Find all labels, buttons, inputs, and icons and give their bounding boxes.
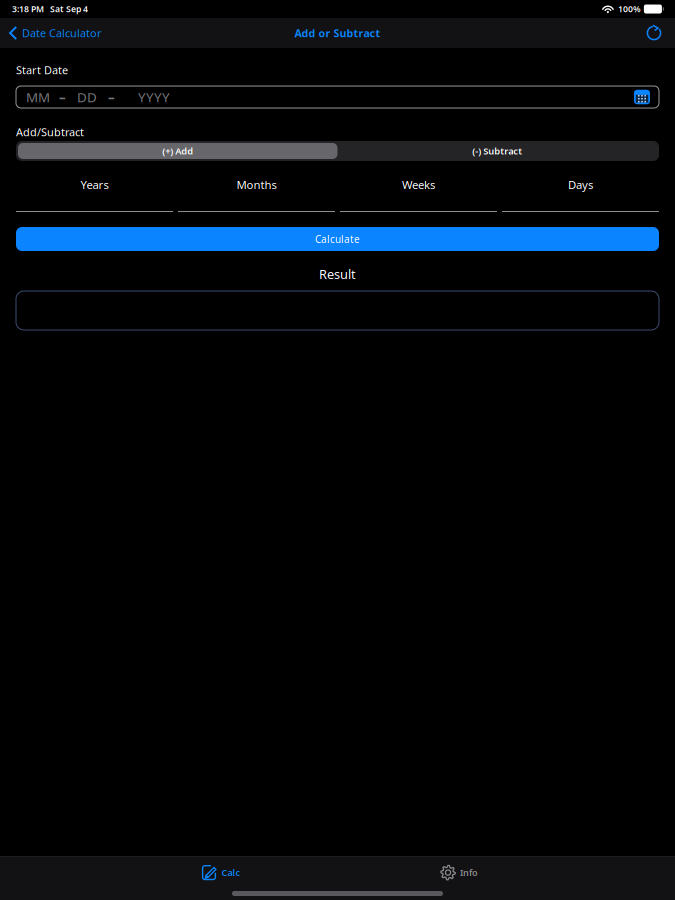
button[interactable]: Weeks: [340, 177, 497, 212]
staticText: Sat Sep 4: [50, 3, 88, 15]
staticText: MM: [26, 88, 50, 106]
staticText: (-) Subtract: [472, 145, 522, 157]
staticText: Years: [80, 177, 108, 192]
button[interactable]: Info: [400, 858, 518, 888]
button[interactable]: Choose a date: [634, 90, 650, 104]
staticText: Add or Subtract: [294, 26, 380, 40]
staticText: Info: [460, 866, 478, 879]
button[interactable]: Days: [502, 177, 659, 212]
staticText: (+) Add: [162, 145, 193, 157]
button[interactable]: Years: [16, 177, 173, 212]
staticText: Date Calculator: [22, 26, 102, 40]
staticText: Months: [236, 177, 276, 192]
staticText: 100%: [618, 3, 641, 15]
button[interactable]: (+) Add: [18, 143, 337, 159]
button[interactable]: Date Calculator: [0, 18, 114, 48]
staticText: 3:18 PM: [12, 3, 44, 15]
staticText: Add/Subtract: [16, 125, 84, 139]
button[interactable]: Reset: [633, 18, 675, 48]
staticText: DD: [77, 88, 97, 106]
staticText: Calc: [221, 866, 240, 879]
button[interactable]: Calculate: [16, 227, 659, 251]
button[interactable]: Months: [178, 177, 335, 212]
staticText: Days: [568, 177, 593, 192]
staticText: YYYY: [138, 88, 170, 106]
staticText: –: [59, 88, 66, 106]
staticText: Start Date: [16, 63, 68, 77]
button[interactable]: Calc: [162, 858, 280, 888]
staticText: Result: [319, 265, 356, 283]
staticText: Calculate: [315, 232, 360, 246]
staticText: Weeks: [402, 177, 435, 192]
button[interactable]: (-) Subtract: [337, 143, 657, 159]
staticText: –: [108, 88, 115, 106]
